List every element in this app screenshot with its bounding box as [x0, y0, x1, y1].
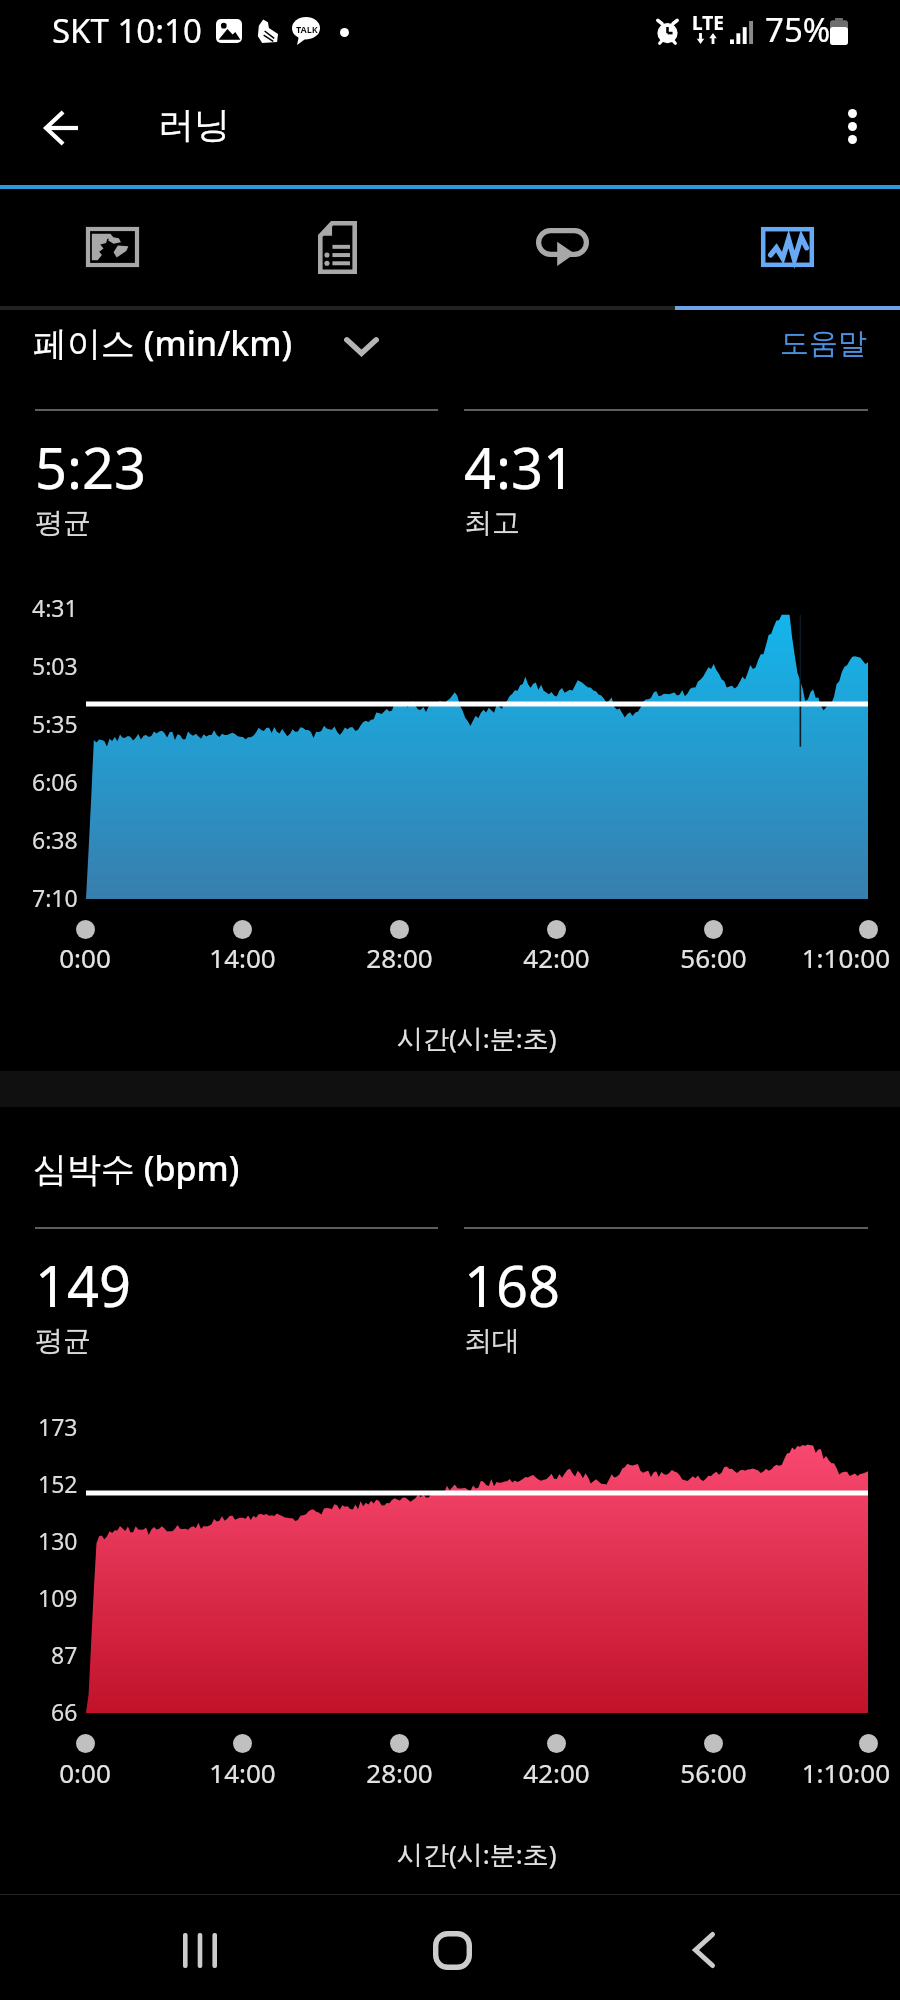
button[interactable]: More options	[815, 91, 889, 165]
staticText: 0:00	[59, 940, 111, 975]
staticText: 도움말	[780, 325, 867, 362]
staticText: 14:00	[209, 940, 276, 975]
staticText: 시간(시:분:초)	[397, 1020, 557, 1056]
button[interactable]: 페이스 (min/km)	[33, 320, 379, 366]
button[interactable]: Details	[225, 189, 450, 305]
staticText: 5:23	[35, 429, 147, 505]
staticText: 6:38	[32, 824, 78, 855]
staticText: 페이스 (min/km)	[33, 320, 293, 366]
button[interactable]: Home	[404, 1902, 500, 1998]
staticText: 7:10	[32, 882, 78, 913]
staticText: 0:00	[59, 1755, 111, 1790]
staticText: 4:31	[464, 429, 576, 505]
button[interactable]: 도움말	[780, 325, 867, 362]
staticText: 56:00	[680, 1755, 747, 1790]
staticText: 5:03	[32, 650, 78, 681]
button[interactable]: Back	[25, 91, 99, 165]
staticText: 28:00	[366, 940, 433, 975]
staticText: 168	[464, 1247, 561, 1323]
staticText: 28:00	[366, 1755, 433, 1790]
staticText: 75%	[765, 7, 831, 52]
staticText: 평균	[35, 1323, 91, 1358]
button[interactable]: Map	[0, 189, 225, 305]
staticText: 최대	[464, 1323, 520, 1358]
staticText: 14:00	[209, 1755, 276, 1790]
staticText: 시간(시:분:초)	[397, 1836, 557, 1872]
staticText: 130	[38, 1525, 78, 1556]
staticText: 평균	[35, 505, 91, 540]
staticText: 4:31	[32, 592, 78, 623]
staticText: TALK	[296, 23, 318, 35]
button[interactable]: Back	[656, 1902, 752, 1998]
staticText: 109	[38, 1582, 78, 1613]
staticText: 173	[38, 1411, 78, 1442]
staticText: 최고	[464, 505, 520, 540]
staticText: 1:10:00	[801, 940, 890, 975]
button[interactable]: Recent apps	[152, 1902, 248, 1998]
staticText: 152	[38, 1468, 78, 1499]
button[interactable]: Charts	[675, 189, 900, 305]
staticText: 1:10:00	[801, 1755, 890, 1790]
staticText: 87	[51, 1639, 78, 1670]
staticText: 42:00	[523, 1755, 590, 1790]
staticText: 66	[51, 1696, 78, 1727]
staticText: 149	[35, 1247, 132, 1323]
staticText: LTE	[692, 10, 724, 36]
staticText: 6:06	[32, 766, 78, 797]
staticText: 5:35	[32, 708, 78, 739]
staticText: 심박수 (bpm)	[33, 1145, 240, 1191]
button[interactable]: Laps	[450, 189, 675, 305]
staticText: 42:00	[523, 940, 590, 975]
staticText: 56:00	[680, 940, 747, 975]
staticText: 러닝	[158, 102, 230, 147]
staticText: SKT 10:10	[52, 8, 202, 53]
